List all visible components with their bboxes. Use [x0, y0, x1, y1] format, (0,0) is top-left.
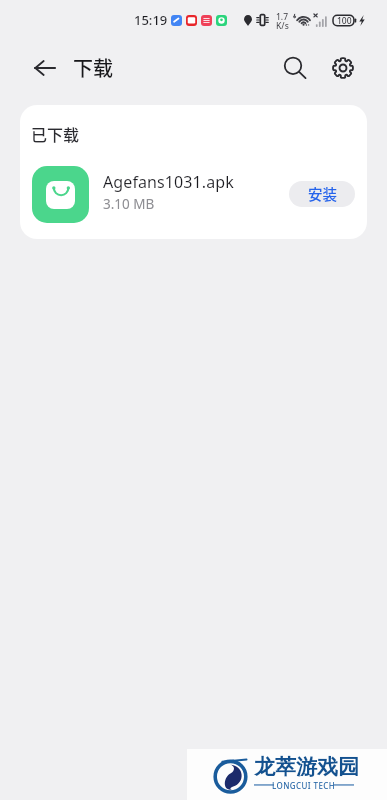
button[interactable]: Settings	[325, 50, 361, 86]
staticText: 100	[337, 15, 352, 27]
staticText: 1.7	[276, 11, 289, 23]
staticText: 下载	[73, 53, 113, 82]
button[interactable]: Search	[277, 50, 313, 86]
staticText: 安装	[308, 183, 337, 204]
staticText: 15:19	[134, 11, 168, 29]
button[interactable]: Agefans1031.apk	[20, 163, 367, 225]
staticText: 3.10 MB	[103, 195, 155, 213]
staticText: 已下载	[31, 122, 80, 145]
staticText: Agefans1031.apk	[103, 171, 234, 193]
staticText: LONGCUI TECH	[272, 780, 336, 789]
button[interactable]: 安装	[289, 181, 355, 207]
staticText: 龙萃游戏园	[254, 754, 359, 780]
button[interactable]: Back	[30, 53, 60, 83]
staticText: K/s	[276, 20, 289, 32]
